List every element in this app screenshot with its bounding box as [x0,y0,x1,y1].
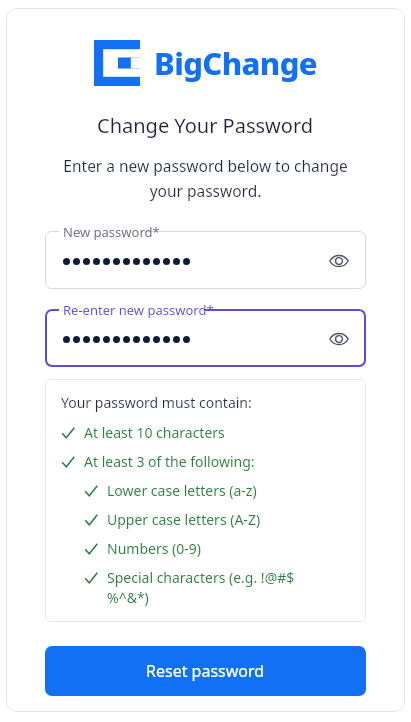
staticText: New password* [63,223,160,241]
staticText: BigChange [154,42,318,84]
button[interactable]: Show password [322,322,356,356]
staticText: At least 3 of the following: [84,452,255,471]
button[interactable]: Reset password [45,646,366,696]
staticText: Special characters (e.g. !@#$ %^&*) [107,568,295,608]
staticText: At least 10 characters [84,423,225,442]
staticText: Numbers (0-9) [107,539,201,558]
staticText: Upper case letters (A-Z) [107,510,261,529]
staticText: Reset password [146,660,265,682]
button[interactable]: Show password [322,244,356,278]
staticText: Re-enter new password* [63,301,214,319]
staticText: Lower case letters (a-z) [107,481,257,500]
staticText: Your password must contain: [61,393,252,412]
staticText: Change Your Password [97,112,314,139]
staticText: Enter a new password below to change you… [26,155,385,201]
